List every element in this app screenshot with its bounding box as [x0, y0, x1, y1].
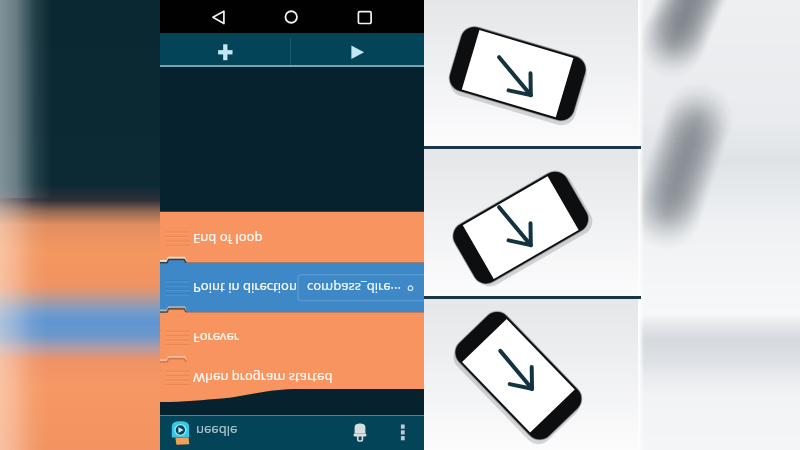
staticText: Point in direction [193, 279, 297, 297]
staticText: Forever [193, 329, 240, 347]
button[interactable]: Add block [160, 33, 292, 67]
button[interactable]: Recent apps [335, 0, 383, 33]
button[interactable]: Run program [292, 33, 424, 67]
other: needle [160, 416, 252, 450]
button[interactable]: Voice input [348, 420, 372, 444]
button[interactable]: needle [160, 416, 252, 450]
staticText: When program started [193, 369, 333, 387]
staticText: compass_dire··· [307, 279, 402, 297]
staticText: needle [196, 422, 238, 440]
button[interactable]: Back [200, 0, 248, 33]
button[interactable]: Home [267, 0, 315, 33]
staticText: End of loop [193, 230, 263, 248]
button[interactable]: More options [393, 424, 413, 444]
